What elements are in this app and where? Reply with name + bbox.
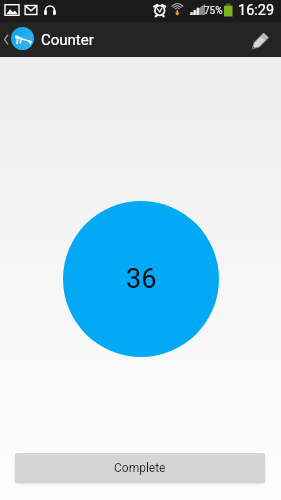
button[interactable]: Up: [0, 28, 100, 51]
staticText: 75%: [204, 5, 223, 17]
staticText: 36: [126, 263, 157, 295]
staticText: Counter: [41, 31, 94, 49]
button[interactable]: 36: [63, 201, 219, 357]
staticText: 16:29: [238, 2, 275, 19]
staticText: Complete: [114, 461, 166, 475]
button[interactable]: Complete: [15, 453, 265, 483]
button[interactable]: Edit: [245, 24, 277, 56]
